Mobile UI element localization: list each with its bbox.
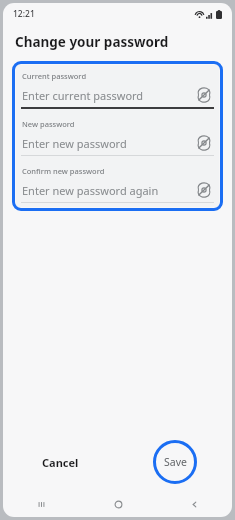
staticText: Change your password bbox=[15, 33, 169, 51]
button[interactable]: Confirm new password bbox=[16, 160, 219, 207]
staticText: Cancel bbox=[42, 455, 79, 470]
button[interactable]: New password bbox=[16, 113, 219, 160]
staticText: Enter current password bbox=[22, 88, 144, 103]
staticText: Confirm new password bbox=[22, 166, 105, 176]
staticText: Save bbox=[164, 455, 187, 469]
button[interactable]: Show password bbox=[196, 135, 212, 151]
staticText: Enter new password again bbox=[22, 183, 159, 198]
button[interactable]: Recent apps bbox=[3, 491, 80, 517]
button[interactable]: Show password bbox=[196, 87, 212, 103]
staticText: Enter new password bbox=[22, 136, 127, 151]
button[interactable]: Cancel bbox=[3, 440, 117, 484]
staticText: New password bbox=[22, 119, 75, 129]
staticText: 12:21 bbox=[13, 8, 35, 20]
button[interactable]: Save bbox=[117, 437, 232, 487]
button[interactable]: Current password bbox=[16, 65, 219, 113]
button[interactable]: Show password bbox=[196, 182, 212, 198]
button[interactable]: Back bbox=[156, 491, 232, 517]
staticText: Current password bbox=[22, 71, 87, 81]
button[interactable]: Home bbox=[80, 491, 156, 517]
